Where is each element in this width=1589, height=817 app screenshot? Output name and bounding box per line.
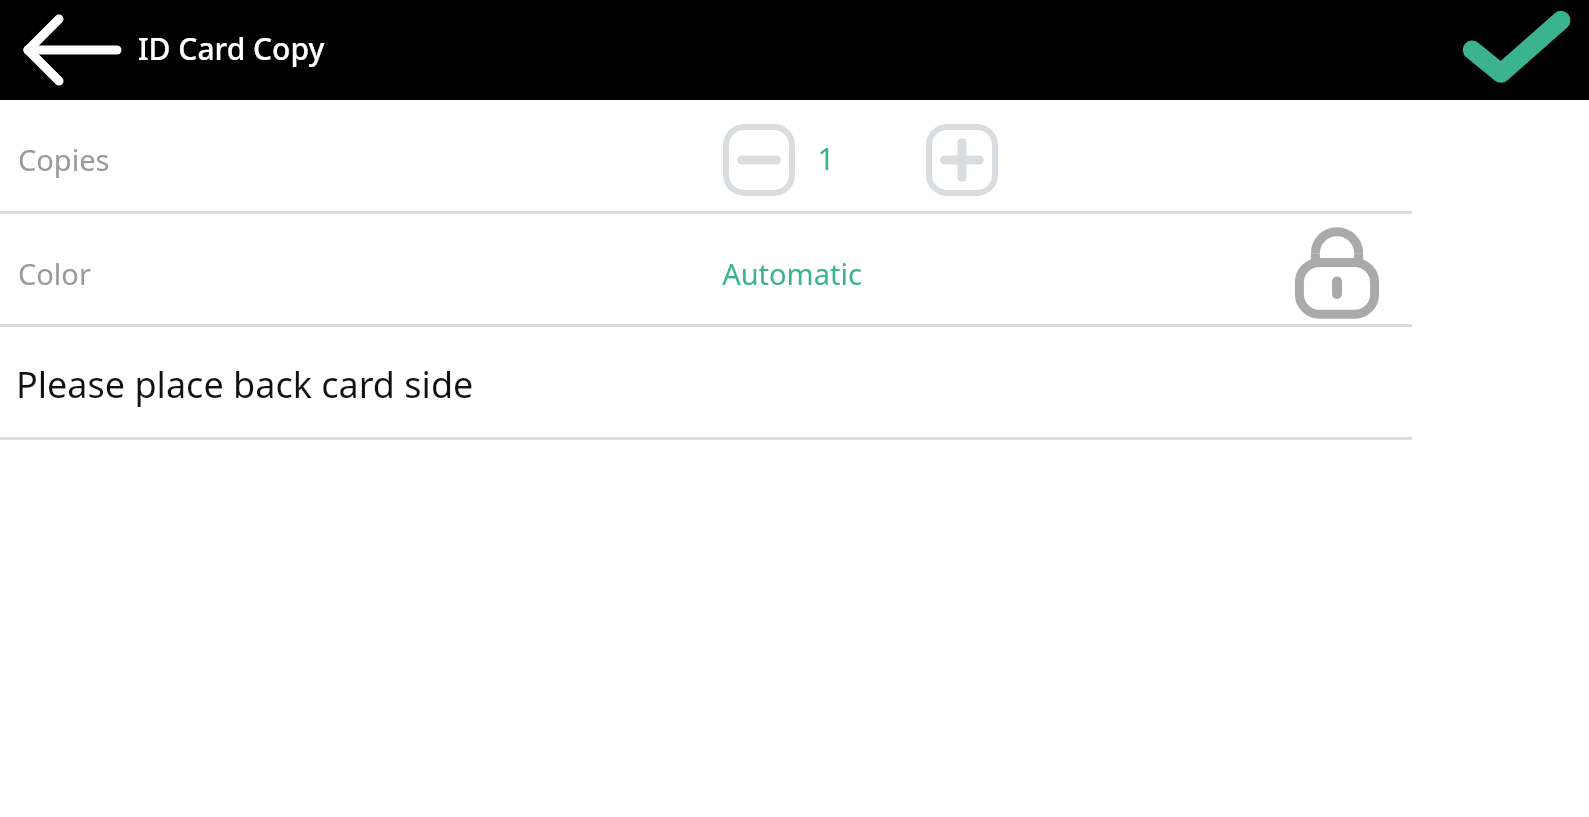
staticText: Automatic [642, 254, 942, 293]
button[interactable]: Back [6, 6, 124, 94]
staticText: 1 [806, 138, 846, 179]
staticText: Copies [18, 140, 110, 179]
button[interactable]: Locked [1290, 224, 1384, 320]
button[interactable]: Confirm [1453, 5, 1573, 95]
staticText: Color [18, 254, 91, 293]
button[interactable]: Color [0, 214, 1589, 325]
button[interactable]: Copies [0, 100, 1589, 213]
button[interactable]: Increase copies [926, 124, 998, 196]
button[interactable]: Decrease copies [723, 124, 795, 196]
button[interactable]: Please place back card side [0, 327, 1589, 438]
staticText: Please place back card side [16, 360, 474, 409]
staticText: ID Card Copy [138, 28, 325, 69]
